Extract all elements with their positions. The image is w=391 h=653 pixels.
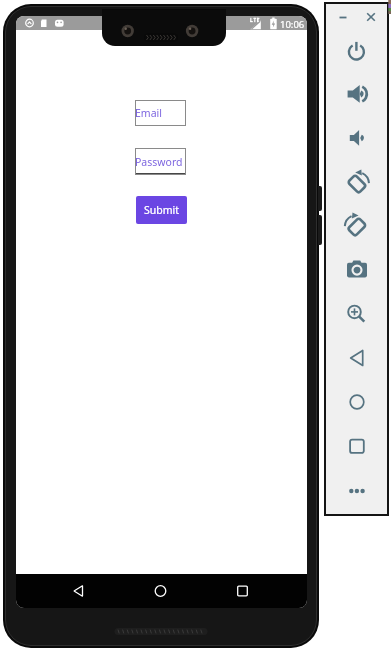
staticText: Submit [144, 203, 180, 217]
button[interactable] [228, 578, 257, 604]
staticText: Email [135, 106, 162, 120]
button[interactable]: Password [135, 148, 186, 175]
button[interactable] [342, 80, 370, 108]
button[interactable] [336, 10, 350, 24]
button[interactable]: Email [135, 100, 186, 126]
staticText: Password [135, 155, 183, 169]
button[interactable] [342, 432, 370, 460]
button[interactable] [342, 212, 370, 240]
button[interactable]: Submit [136, 196, 187, 224]
button[interactable] [364, 10, 378, 24]
staticText: 10:06 [280, 18, 305, 31]
button[interactable] [342, 477, 370, 505]
button[interactable] [146, 578, 175, 604]
button[interactable] [64, 578, 93, 604]
button[interactable] [342, 299, 370, 327]
button[interactable] [342, 344, 370, 372]
button[interactable] [342, 124, 370, 152]
button[interactable] [342, 256, 370, 284]
button[interactable] [342, 169, 370, 197]
button[interactable] [342, 388, 370, 416]
button[interactable] [342, 37, 370, 65]
